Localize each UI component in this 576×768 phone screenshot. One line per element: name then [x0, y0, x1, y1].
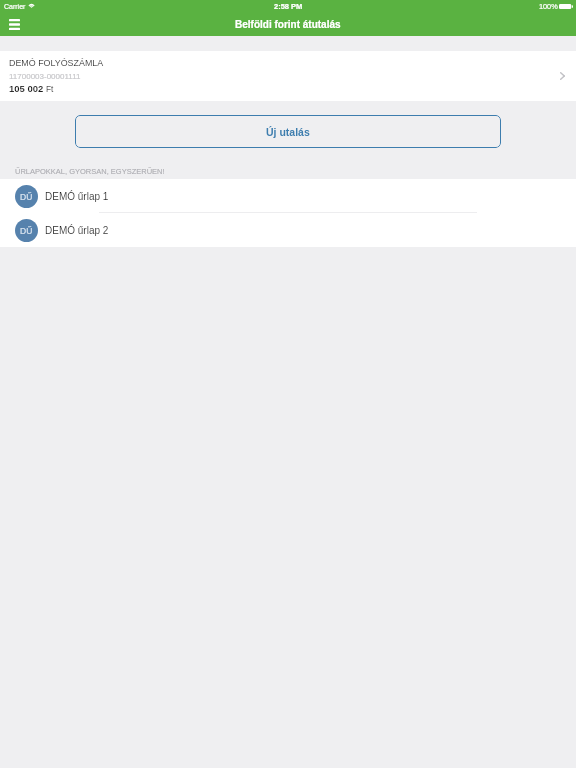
staticText: ŰRLAPOKKAL, GYORSAN, EGYSZERŰEN!: [15, 167, 165, 175]
staticText: Új utalás: [266, 126, 310, 138]
staticText: 100%: [539, 2, 558, 10]
staticText: 105 002: [9, 83, 44, 94]
staticText: DŰ: [20, 226, 33, 235]
button[interactable]: Menu: [0, 16, 29, 32]
staticText: DŰ: [20, 192, 33, 201]
button[interactable]: DEMÓ FOLYÓSZÁMLA: [0, 51, 576, 101]
staticText: Ft: [46, 84, 54, 93]
staticText: DEMÓ FOLYÓSZÁMLA: [9, 58, 104, 68]
button[interactable]: DŰ: [0, 213, 576, 247]
button[interactable]: DŰ: [0, 179, 576, 213]
staticText: 2:58 PM: [274, 2, 303, 10]
staticText: Carrier: [4, 3, 26, 11]
button[interactable]: Új utalás: [75, 115, 501, 148]
staticText: 11700003-00001111: [9, 72, 81, 81]
staticText: DEMÓ űrlap 2: [45, 225, 109, 236]
staticText: Belföldi forint átutalás: [235, 19, 341, 30]
staticText: DEMÓ űrlap 1: [45, 191, 109, 202]
